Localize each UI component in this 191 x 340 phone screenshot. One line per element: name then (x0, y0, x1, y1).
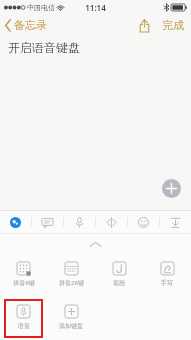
staticText: 11:14 (85, 2, 106, 13)
staticText: 语音 (18, 322, 30, 330)
button[interactable]: 备忘录 (0, 15, 55, 35)
button[interactable]: Input method (0, 211, 31, 233)
button[interactable]: 语音 (4, 299, 43, 338)
button[interactable]: 拼音9键 (4, 256, 43, 295)
button[interactable]: 笔画 (99, 256, 139, 295)
button[interactable]: Collapse (0, 234, 191, 254)
button[interactable]: Add (162, 179, 181, 198)
staticText: 开启语音键盘 (8, 40, 80, 55)
staticText: 手写 (161, 279, 173, 287)
staticText: 拼音26键 (59, 279, 84, 287)
button[interactable]: Share (134, 17, 155, 34)
staticText: 拼音9键 (13, 279, 35, 287)
staticText: 中国电信 (27, 3, 55, 12)
button[interactable]: 手写 (147, 256, 187, 295)
staticText: 备忘录 (14, 18, 47, 32)
button[interactable]: 完成 (160, 16, 186, 34)
button[interactable]: 添加键盘 (51, 299, 91, 338)
staticText: 完成 (162, 18, 184, 32)
button[interactable]: Download (160, 211, 191, 233)
button[interactable]: Messages (32, 211, 63, 233)
button[interactable]: Translate (96, 211, 127, 233)
button[interactable]: Voice input (64, 211, 95, 233)
button[interactable]: 拼音26键 (51, 256, 91, 295)
staticText: 笔画 (113, 279, 125, 287)
button[interactable]: Emoji (128, 211, 159, 233)
staticText: 添加键盘 (59, 322, 83, 330)
